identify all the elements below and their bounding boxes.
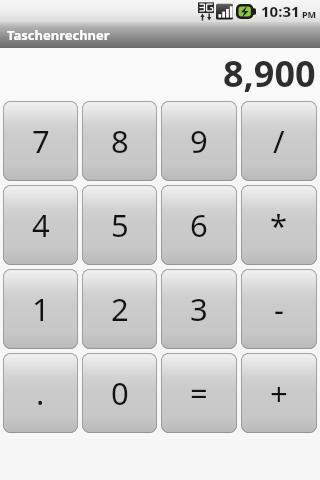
staticText: Taschenrechner bbox=[7, 26, 110, 44]
staticText: 2 bbox=[111, 288, 129, 330]
staticText: 8,900 bbox=[223, 49, 316, 98]
staticText: 7 bbox=[32, 120, 50, 162]
staticText: 10:31 bbox=[261, 1, 300, 21]
button[interactable]: / bbox=[241, 101, 317, 181]
staticText: 3 bbox=[190, 288, 208, 330]
button[interactable]: 6 bbox=[161, 185, 237, 265]
button[interactable]: + bbox=[241, 353, 317, 433]
staticText: + bbox=[270, 372, 288, 414]
staticText: = bbox=[190, 372, 208, 414]
staticText: 1 bbox=[32, 288, 50, 330]
button[interactable]: 2 bbox=[82, 269, 157, 349]
staticText: 4 bbox=[32, 204, 50, 246]
button[interactable]: = bbox=[161, 353, 237, 433]
staticText: - bbox=[274, 288, 284, 330]
button[interactable]: 7 bbox=[3, 101, 78, 181]
button[interactable]: 3 bbox=[161, 269, 237, 349]
button[interactable]: . bbox=[3, 353, 78, 433]
staticText: PM bbox=[302, 8, 317, 20]
button[interactable]: 1 bbox=[3, 269, 78, 349]
button[interactable]: 0 bbox=[82, 353, 157, 433]
button[interactable]: 9 bbox=[161, 101, 237, 181]
staticText: 9 bbox=[190, 120, 208, 162]
staticText: 0 bbox=[111, 372, 129, 414]
staticText: 8 bbox=[111, 120, 129, 162]
button[interactable]: 5 bbox=[82, 185, 157, 265]
button[interactable]: 8 bbox=[82, 101, 157, 181]
button[interactable]: 4 bbox=[3, 185, 78, 265]
staticText: / bbox=[273, 120, 285, 162]
staticText: 6 bbox=[190, 204, 208, 246]
staticText: . bbox=[36, 372, 45, 414]
staticText: 5 bbox=[111, 204, 129, 246]
button[interactable]: - bbox=[241, 269, 317, 349]
staticText: * bbox=[270, 204, 288, 246]
button[interactable]: * bbox=[241, 185, 317, 265]
